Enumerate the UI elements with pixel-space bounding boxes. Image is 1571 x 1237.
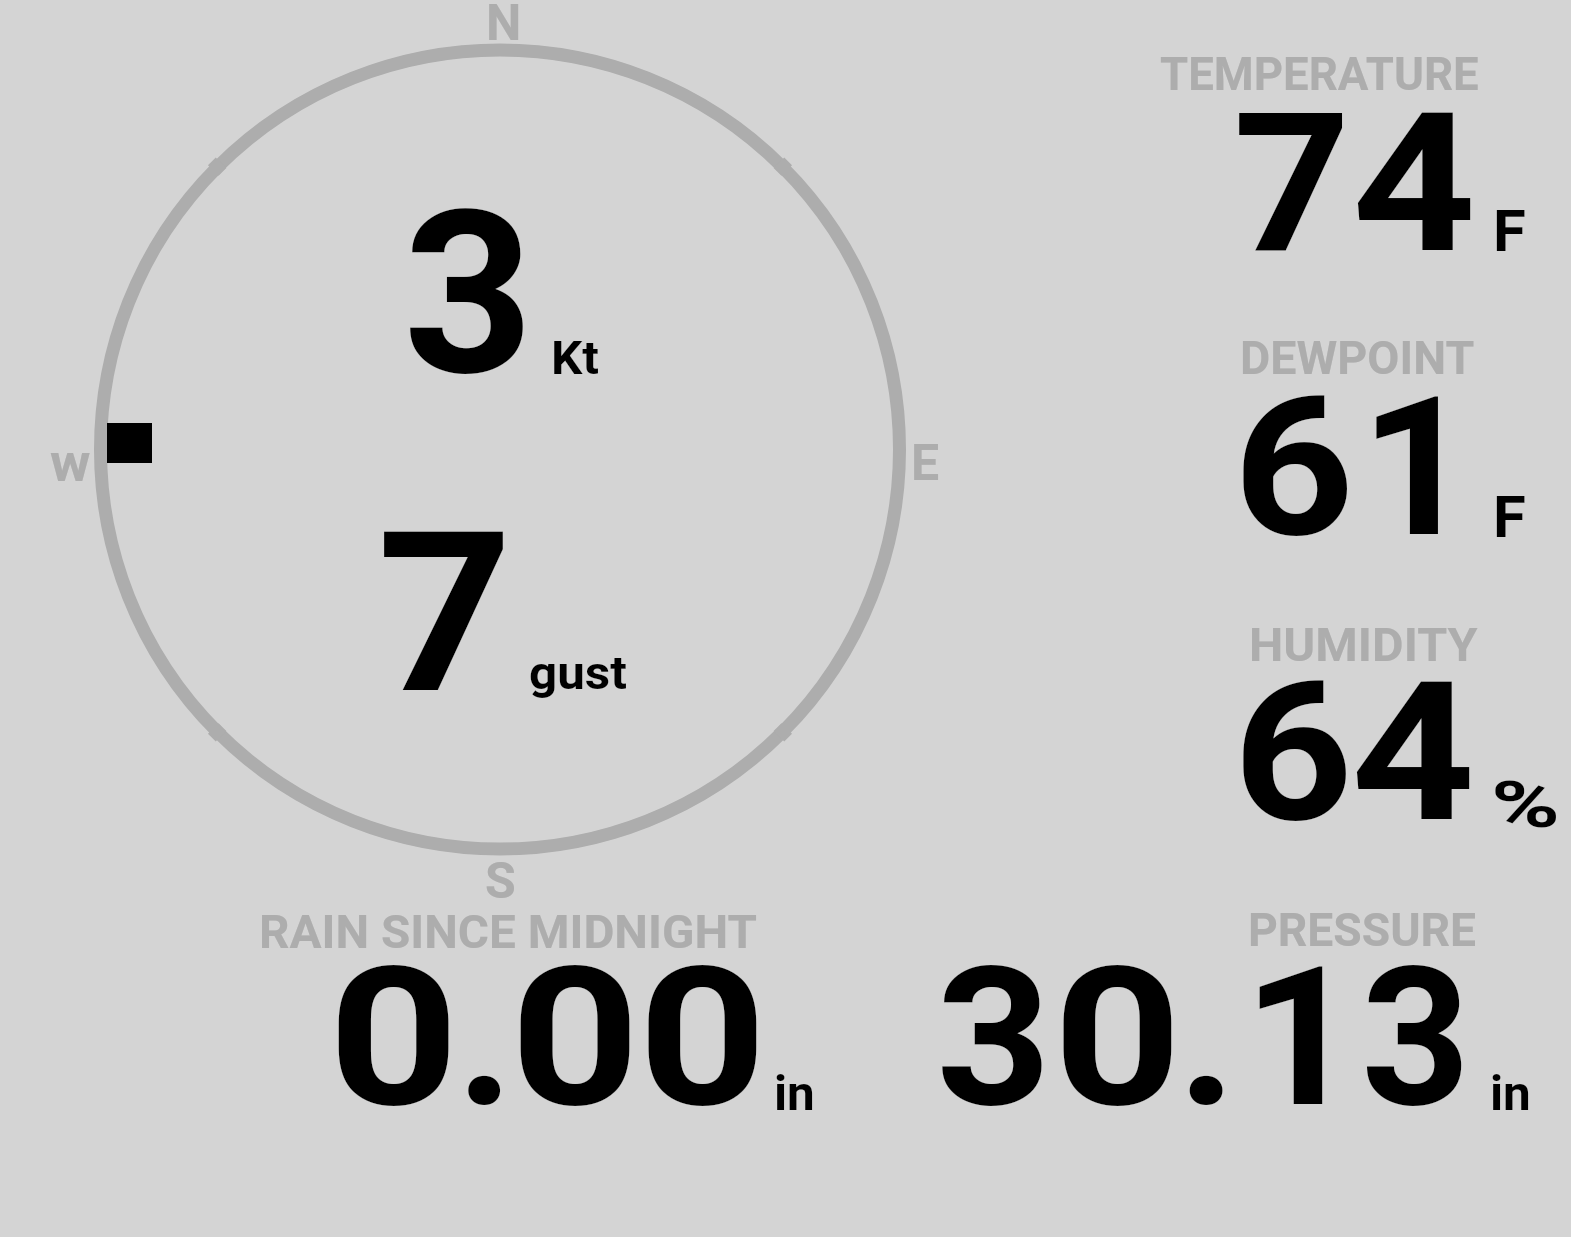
staticText: in <box>1490 1065 1531 1121</box>
staticText: gust <box>529 645 628 700</box>
staticText: E <box>911 434 940 493</box>
button[interactable]: Pressure 30.13 inches <box>920 895 1540 1125</box>
button[interactable]: Humidity 64 percent <box>1150 610 1571 840</box>
staticText: 0 <box>510 925 640 1151</box>
staticText: 3 <box>403 162 534 427</box>
staticText: PRESSURE <box>1248 903 1476 957</box>
staticText: 7 <box>1233 71 1351 297</box>
staticText: . <box>1177 925 1238 1151</box>
staticText: TEMPERATURE <box>1160 47 1479 101</box>
staticText: N <box>486 0 522 53</box>
staticText: 6 <box>1233 355 1355 581</box>
staticText: 1 <box>1360 355 1475 581</box>
staticText: 0 <box>1053 925 1182 1151</box>
staticText: 0 <box>638 925 767 1151</box>
staticText: % <box>1491 768 1561 843</box>
staticText: F <box>1493 484 1527 551</box>
staticText: RAIN SINCE MIDNIGHT <box>259 905 757 959</box>
staticText: 3 <box>1361 925 1471 1151</box>
button[interactable]: Wind direction compass, wind from the we… <box>80 30 920 870</box>
staticText: F <box>1493 198 1527 265</box>
staticText: DEWPOINT <box>1240 331 1475 385</box>
button[interactable]: Temperature 74 degrees Fahrenheit <box>1150 40 1571 270</box>
staticText: 4 <box>1351 640 1475 866</box>
staticText: . <box>456 925 515 1151</box>
staticText: w <box>50 434 91 494</box>
staticText: 0 <box>328 925 459 1151</box>
staticText: 3 <box>936 925 1052 1151</box>
staticText: 7 <box>377 484 513 744</box>
button[interactable]: Dew point 61 degrees Fahrenheit <box>1150 325 1571 555</box>
staticText: in <box>774 1065 815 1121</box>
staticText: 6 <box>1233 640 1353 866</box>
staticText: S <box>485 852 516 911</box>
staticText: 1 <box>1243 925 1360 1151</box>
staticText: 4 <box>1352 71 1476 297</box>
staticText: HUMIDITY <box>1249 618 1478 672</box>
button[interactable]: Rain since midnight 0.00 inches <box>250 895 830 1125</box>
staticText: Kt <box>551 330 599 385</box>
